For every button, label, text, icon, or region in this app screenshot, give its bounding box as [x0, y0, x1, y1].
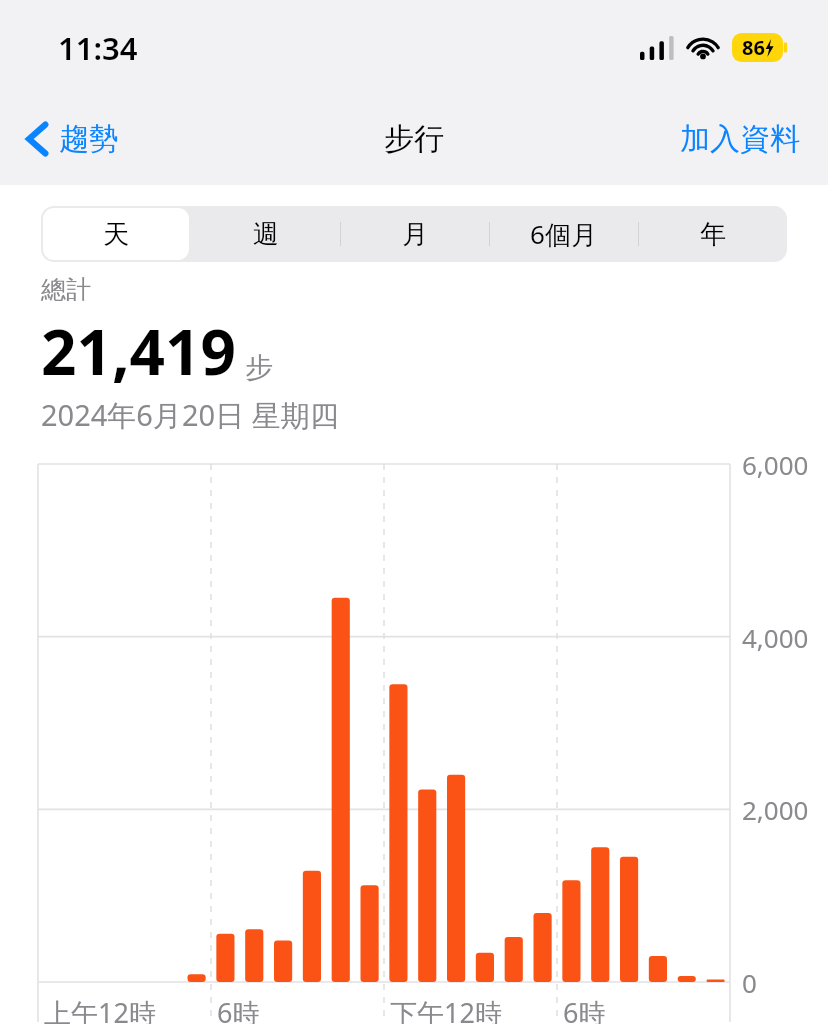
staticText: 總計: [41, 274, 91, 305]
staticText: 趨勢: [59, 120, 119, 158]
staticText: 0: [742, 965, 757, 1000]
staticText: 11:34: [58, 27, 138, 69]
staticText: 6時: [217, 994, 260, 1024]
button[interactable]: 加入資料: [652, 112, 828, 166]
staticText: 上午12時: [44, 994, 156, 1024]
staticText: 4,000: [742, 620, 809, 655]
staticText: 加入資料: [680, 120, 800, 158]
staticText: 6個月: [530, 216, 597, 252]
staticText: 6時: [563, 994, 606, 1024]
button[interactable]: 天: [41, 206, 191, 262]
button[interactable]: 月: [340, 206, 489, 262]
staticText: 週: [253, 218, 279, 251]
staticText: 年: [700, 218, 726, 251]
staticText: 步行: [384, 120, 444, 158]
button[interactable]: 年: [638, 206, 787, 262]
staticText: 2,000: [742, 792, 809, 827]
button[interactable]: 週: [191, 206, 340, 262]
staticText: 下午12時: [390, 994, 502, 1024]
button[interactable]: 趨勢: [0, 112, 135, 166]
staticText: 86: [742, 34, 765, 61]
staticText: 步: [245, 350, 273, 385]
staticText: 2024年6月20日 星期四: [41, 395, 339, 435]
staticText: 月: [402, 218, 428, 251]
staticText: 天: [103, 218, 129, 251]
staticText: 6,000: [742, 447, 809, 482]
button[interactable]: 6個月: [489, 206, 638, 262]
staticText: 21,419: [41, 309, 236, 393]
